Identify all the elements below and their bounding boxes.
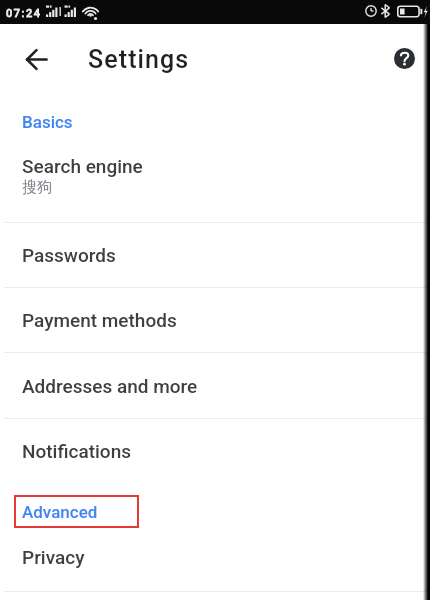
button[interactable]: Basics [0, 95, 430, 145]
staticText: Privacy [22, 546, 85, 568]
button[interactable]: Payment methods [0, 288, 430, 352]
staticText: Settings [88, 45, 190, 74]
staticText: Search engine [22, 155, 143, 177]
staticText: Advanced [22, 502, 98, 522]
staticText: Passwords [22, 244, 116, 266]
button[interactable]: Passwords [0, 223, 430, 287]
button[interactable]: Notifications [0, 419, 430, 483]
staticText: Payment methods [22, 309, 177, 331]
button[interactable]: Help [386, 40, 422, 76]
button[interactable]: Search engine [0, 145, 430, 222]
staticText: Addresses and more [22, 375, 198, 397]
staticText: Basics [22, 112, 73, 132]
button[interactable]: Privacy [0, 529, 430, 591]
staticText: 搜狗 [22, 178, 52, 197]
staticText: 07:24 [6, 7, 42, 20]
staticText: Notifications [22, 440, 131, 462]
button[interactable]: Advanced [14, 495, 139, 528]
button[interactable]: Back [12, 35, 60, 83]
button[interactable]: Addresses and more [0, 353, 430, 418]
